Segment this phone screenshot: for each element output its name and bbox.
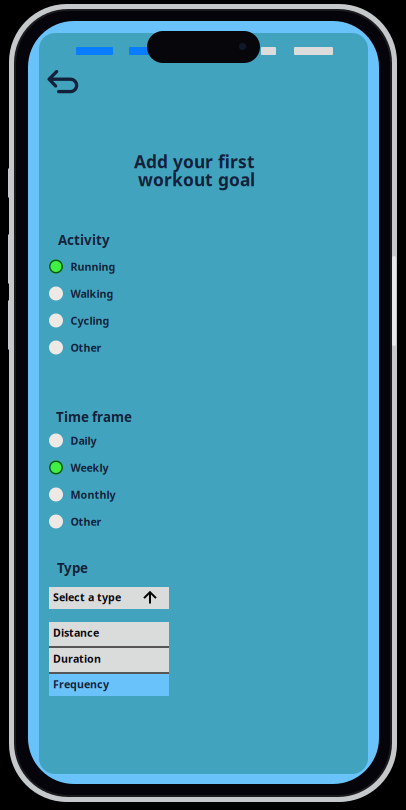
button[interactable]: Back	[41, 65, 85, 99]
staticText: Frequency	[53, 677, 109, 691]
button[interactable]: Daily	[49, 427, 229, 454]
button[interactable]: Weekly	[49, 454, 229, 481]
staticText: Other	[70, 514, 101, 529]
staticText: Monthly	[70, 487, 115, 502]
staticText: Cycling	[70, 313, 109, 328]
staticText: Activity	[58, 231, 110, 249]
staticText: workout goal	[138, 168, 255, 191]
staticText: Weekly	[70, 460, 108, 475]
staticText: Time frame	[56, 408, 132, 426]
button[interactable]: Monthly	[49, 481, 229, 508]
button[interactable]: Other	[49, 334, 229, 361]
button[interactable]: Duration	[49, 648, 169, 672]
button[interactable]: Other	[49, 508, 229, 535]
button[interactable]: Select a type	[49, 587, 169, 609]
staticText: Walking	[70, 286, 113, 301]
button[interactable]: Frequency	[49, 674, 169, 696]
button[interactable]: Walking	[49, 280, 229, 307]
button[interactable]: Distance	[49, 622, 169, 646]
staticText: Type	[57, 559, 88, 577]
staticText: Duration	[53, 651, 101, 666]
staticText: Add your first	[134, 150, 255, 173]
button[interactable]: Cycling	[49, 307, 229, 334]
staticText: Select a type	[53, 590, 121, 604]
staticText: Running	[70, 259, 115, 274]
staticText: Daily	[70, 433, 96, 448]
button[interactable]: Running	[49, 253, 229, 280]
staticText: Distance	[53, 625, 99, 640]
staticText: Other	[70, 340, 101, 355]
